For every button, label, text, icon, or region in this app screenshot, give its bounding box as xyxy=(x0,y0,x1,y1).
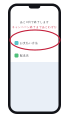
button[interactable]: 配送先 xyxy=(10,49,58,62)
staticText: キャンペーン終了まであとわずか xyxy=(12,25,57,29)
staticText: あと3日で終了します xyxy=(20,20,49,24)
staticText: 配送先 xyxy=(20,54,29,57)
staticText: お支払い方法 xyxy=(20,41,38,45)
button[interactable]: お支払い方法 xyxy=(10,37,58,49)
